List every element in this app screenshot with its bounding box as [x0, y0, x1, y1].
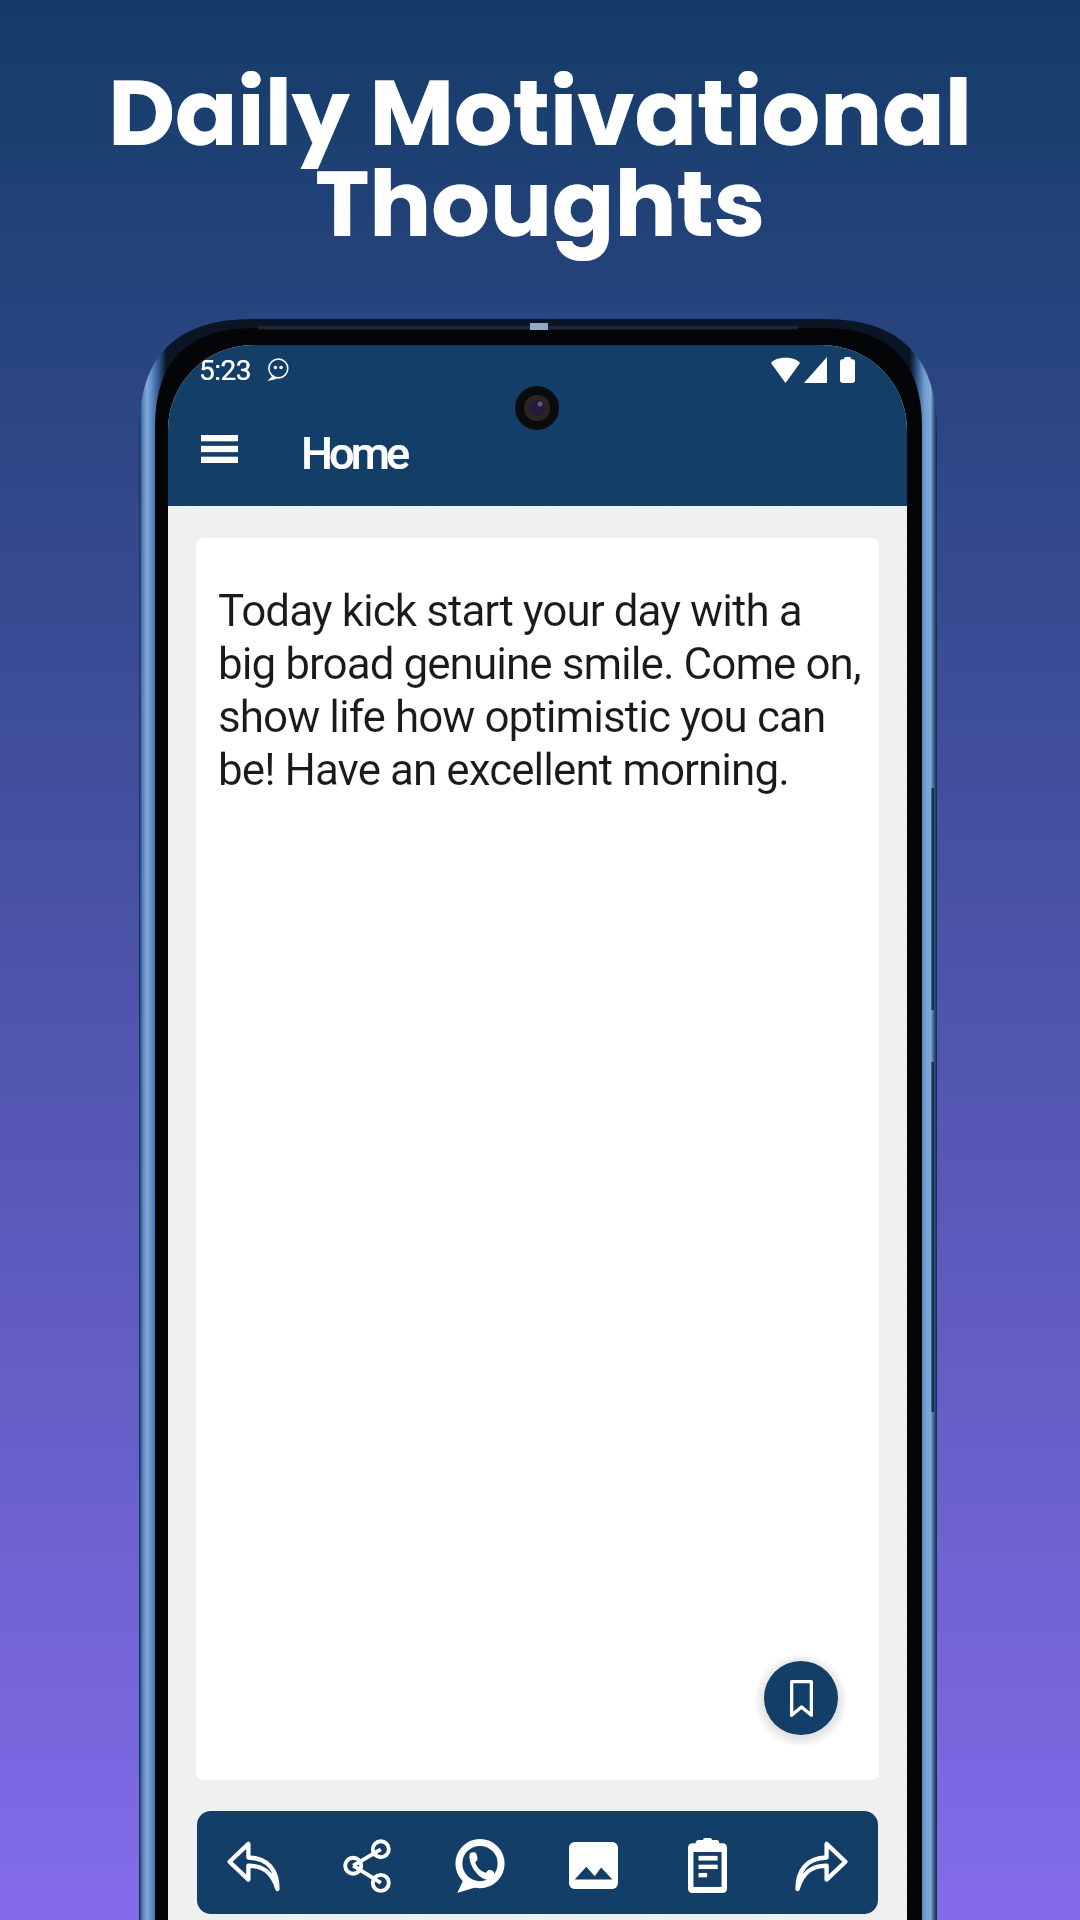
button[interactable]: Forward	[764, 1811, 878, 1914]
button[interactable]: Copy to clipboard	[650, 1811, 764, 1914]
staticText: 5:23	[199, 354, 251, 387]
staticText: Daily Motivational Thoughts	[108, 48, 972, 269]
button[interactable]: Bookmark	[764, 1661, 838, 1735]
button[interactable]: Share on WhatsApp	[423, 1811, 536, 1914]
button[interactable]: Save as image	[536, 1811, 650, 1914]
button[interactable]: Share	[310, 1811, 423, 1914]
staticText: Today kick start your day with a big bro…	[218, 585, 861, 796]
button[interactable]: Reply	[197, 1811, 310, 1914]
staticText: Home	[301, 427, 407, 480]
button[interactable]: Open navigation menu	[191, 421, 247, 477]
